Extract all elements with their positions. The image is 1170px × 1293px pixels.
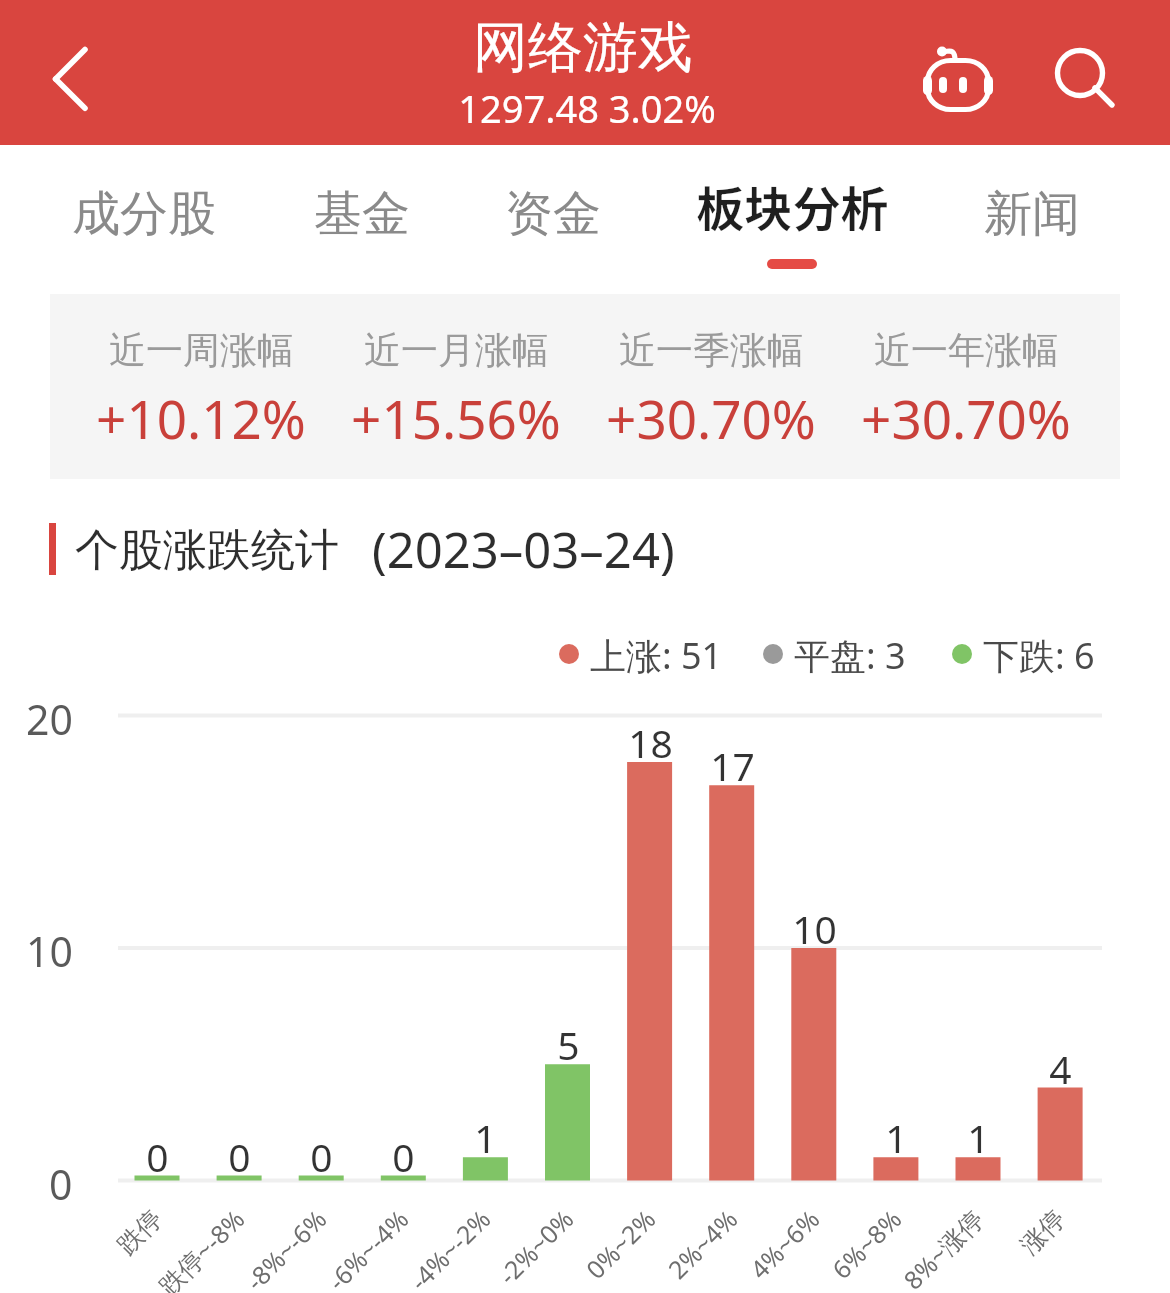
staticText: 涨停	[1014, 1203, 1071, 1261]
staticText: -2%~0%	[490, 1202, 580, 1292]
button[interactable]: AI assistant	[893, 20, 1023, 136]
button[interactable]: Search	[1026, 20, 1144, 136]
staticText: 0	[49, 1156, 73, 1212]
staticText: 0	[146, 1130, 169, 1183]
staticText: 17	[710, 739, 755, 792]
staticText: 8%~涨停	[895, 1202, 990, 1293]
staticText: -6%~-4%	[320, 1202, 415, 1293]
staticText: 近一年涨幅	[874, 327, 1059, 374]
staticText: 网络游戏	[473, 13, 693, 82]
staticText: 2%~4%	[660, 1202, 744, 1286]
staticText: +30.70%	[861, 382, 1071, 454]
button[interactable]: 成分股	[44, 150, 244, 280]
staticText: 平盘: 3	[794, 631, 906, 680]
staticText: 资金	[505, 184, 601, 244]
staticText: -8%~-6%	[238, 1202, 333, 1293]
staticText: 1	[885, 1111, 908, 1164]
button[interactable]: 近一月涨幅	[326, 294, 586, 479]
staticText: +15.56%	[351, 382, 561, 454]
staticText: 0	[228, 1130, 251, 1183]
button[interactable]: 新闻	[947, 150, 1117, 280]
staticText: 跌停~-8%	[151, 1202, 251, 1293]
staticText: 0	[310, 1130, 333, 1183]
staticText: 0	[392, 1130, 415, 1183]
staticText: 4%~6%	[742, 1202, 826, 1286]
staticText: 1297.48 3.02%	[458, 82, 716, 134]
button[interactable]: 资金	[473, 150, 633, 280]
staticText: -4%~-2%	[402, 1202, 497, 1293]
staticText: 基金	[314, 184, 410, 244]
staticText: +30.70%	[606, 382, 816, 454]
button[interactable]: 近一周涨幅	[71, 294, 331, 479]
staticText: 近一月涨幅	[364, 327, 549, 374]
staticText: 0%~2%	[578, 1202, 662, 1286]
staticText: 10	[26, 923, 73, 979]
button[interactable]: 近一季涨幅	[581, 294, 841, 479]
button[interactable]: 基金	[282, 150, 442, 280]
staticText: 跌停	[111, 1203, 168, 1261]
staticText: 6%~8%	[824, 1202, 908, 1286]
staticText: 个股涨跌统计	[75, 523, 339, 578]
staticText: 4	[1049, 1042, 1072, 1095]
staticText: 1	[967, 1111, 990, 1164]
button[interactable]: 近一年涨幅	[836, 294, 1096, 479]
staticText: 成分股	[72, 184, 216, 244]
staticText: 板块分析	[696, 171, 889, 241]
staticText: 新闻	[984, 184, 1080, 244]
staticText: 下跌: 6	[983, 631, 1095, 680]
staticText: 1	[474, 1111, 497, 1164]
staticText: (2023–03–24)	[372, 516, 675, 583]
staticText: 20	[26, 691, 73, 747]
staticText: 10	[792, 902, 837, 955]
staticText: +10.12%	[96, 382, 306, 454]
staticText: 18	[628, 716, 673, 769]
staticText: 上涨: 51	[590, 631, 723, 680]
button[interactable]: Back	[16, 39, 96, 119]
button[interactable]: 板块分析	[682, 150, 902, 280]
staticText: 近一周涨幅	[109, 327, 294, 374]
staticText: 近一季涨幅	[619, 327, 804, 374]
staticText: 5	[557, 1018, 580, 1071]
